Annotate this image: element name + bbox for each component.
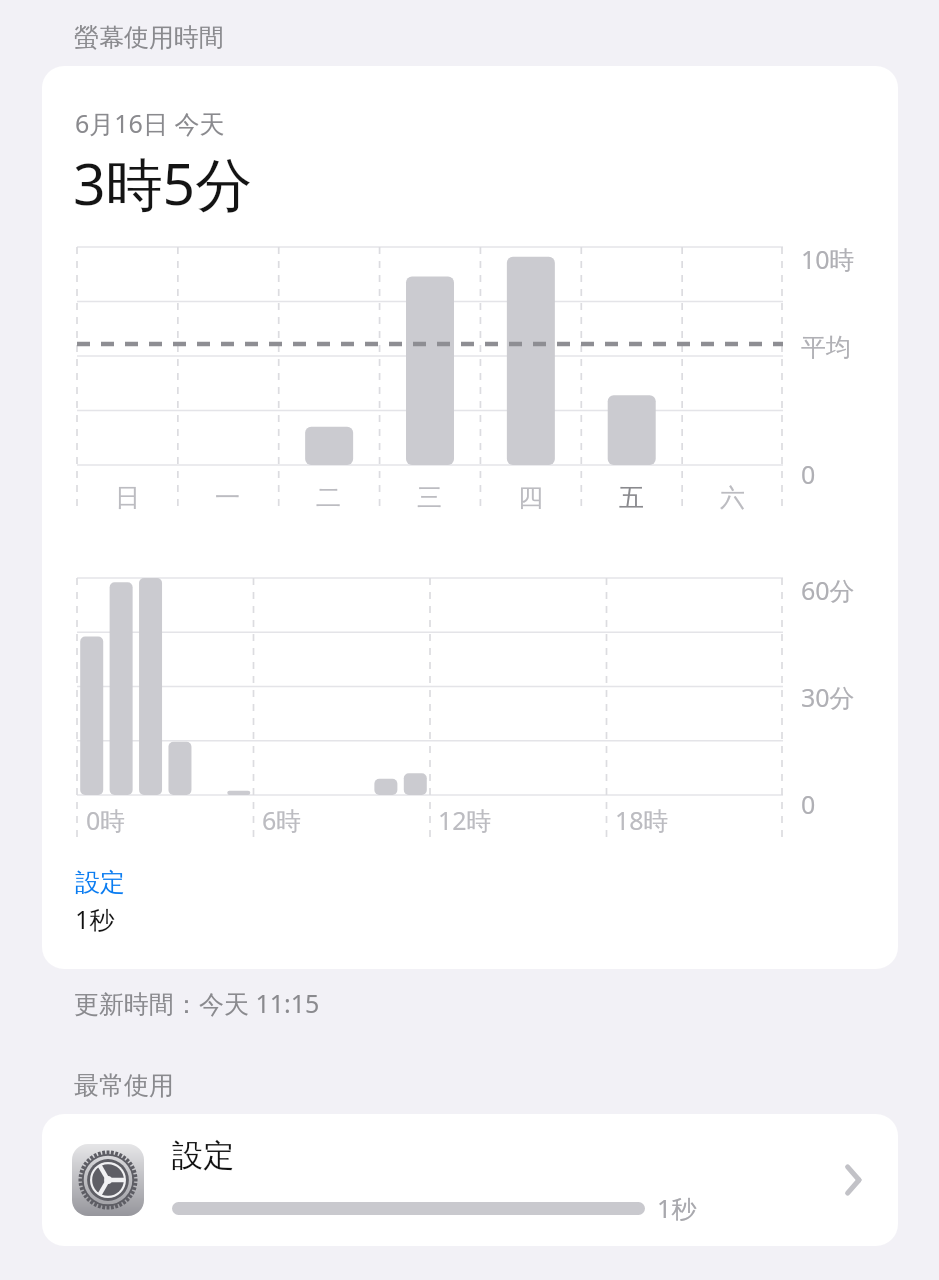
staticText: 最常使用 <box>74 1070 174 1101</box>
staticText: 0 <box>801 457 816 491</box>
staticText: 螢幕使用時間 <box>74 22 224 53</box>
staticText: 四 <box>518 482 543 513</box>
button[interactable]: 設定 <box>75 867 125 898</box>
button[interactable]: 6月16日 今天 <box>42 66 898 969</box>
staticText: 60分 <box>801 573 855 607</box>
staticText: 三 <box>417 482 442 513</box>
staticText: 設定 <box>172 1136 234 1175</box>
staticText: 一 <box>215 482 240 513</box>
staticText: 五 <box>619 482 644 513</box>
staticText: 更新時間：今天 11:15 <box>74 986 320 1020</box>
staticText: 1秒 <box>657 1191 697 1225</box>
staticText: 平均 <box>801 332 851 363</box>
staticText: 0時 <box>86 803 126 837</box>
staticText: 10時 <box>801 242 855 276</box>
staticText: 3時5分 <box>73 144 253 222</box>
staticText: 30分 <box>801 680 855 714</box>
staticText: 日 <box>115 482 140 513</box>
staticText: 12時 <box>438 803 492 837</box>
staticText: 0 <box>801 787 816 821</box>
staticText: 二 <box>316 482 341 513</box>
staticText: 6月16日 今天 <box>75 106 225 140</box>
button[interactable]: 設定 <box>42 1114 898 1246</box>
staticText: 18時 <box>615 803 669 837</box>
button[interactable]: Show 設定 usage details <box>830 1158 874 1202</box>
staticText: 1秒 <box>75 902 115 936</box>
staticText: 6時 <box>262 803 302 837</box>
staticText: 六 <box>720 482 745 513</box>
